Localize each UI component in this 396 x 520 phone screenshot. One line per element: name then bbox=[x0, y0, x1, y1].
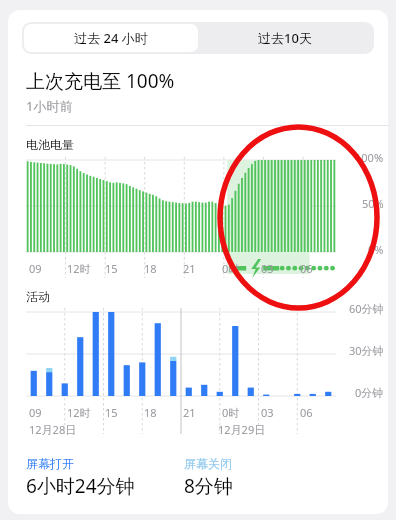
staticText: 1小时前 bbox=[26, 97, 73, 115]
staticText: 06 bbox=[300, 405, 313, 420]
staticText: 过去10天 bbox=[258, 29, 312, 47]
staticText: 21 bbox=[183, 261, 196, 276]
staticText: 12月29日 bbox=[218, 422, 266, 437]
staticText: 60分钟 bbox=[349, 301, 384, 316]
staticText: 06 bbox=[300, 261, 313, 276]
staticText: 电池电量 bbox=[26, 137, 74, 152]
staticText: 屏幕关闭 bbox=[184, 456, 232, 471]
staticText: 屏幕打开 bbox=[26, 456, 74, 471]
staticText: 12时 bbox=[67, 261, 91, 276]
staticText: 0% bbox=[368, 242, 384, 257]
staticText: 100% bbox=[355, 150, 384, 165]
staticText: 50% bbox=[362, 196, 384, 211]
button[interactable]: 过去 24 小时 bbox=[24, 24, 198, 52]
staticText: 21 bbox=[183, 405, 196, 420]
staticText: 15 bbox=[105, 405, 118, 420]
staticText: 30分钟 bbox=[349, 343, 384, 358]
staticText: 8分钟 bbox=[184, 473, 233, 499]
staticText: 6小时24分钟 bbox=[26, 473, 135, 499]
staticText: 09 bbox=[29, 405, 42, 420]
staticText: 0时 bbox=[222, 261, 240, 276]
staticText: 15 bbox=[105, 261, 118, 276]
button[interactable]: 过去10天 bbox=[198, 24, 372, 52]
staticText: 12月28日 bbox=[29, 422, 77, 437]
staticText: 09 bbox=[29, 261, 42, 276]
staticText: 18 bbox=[144, 405, 157, 420]
staticText: 活动 bbox=[26, 289, 50, 304]
staticText: 12时 bbox=[67, 405, 91, 420]
staticText: 0分钟 bbox=[355, 385, 384, 400]
staticText: 03 bbox=[261, 405, 274, 420]
staticText: 18 bbox=[144, 261, 157, 276]
staticText: 0时 bbox=[222, 405, 240, 420]
staticText: 过去 24 小时 bbox=[74, 29, 148, 47]
staticText: 03 bbox=[261, 261, 274, 276]
staticText: 上次充电至 100% bbox=[26, 68, 175, 94]
